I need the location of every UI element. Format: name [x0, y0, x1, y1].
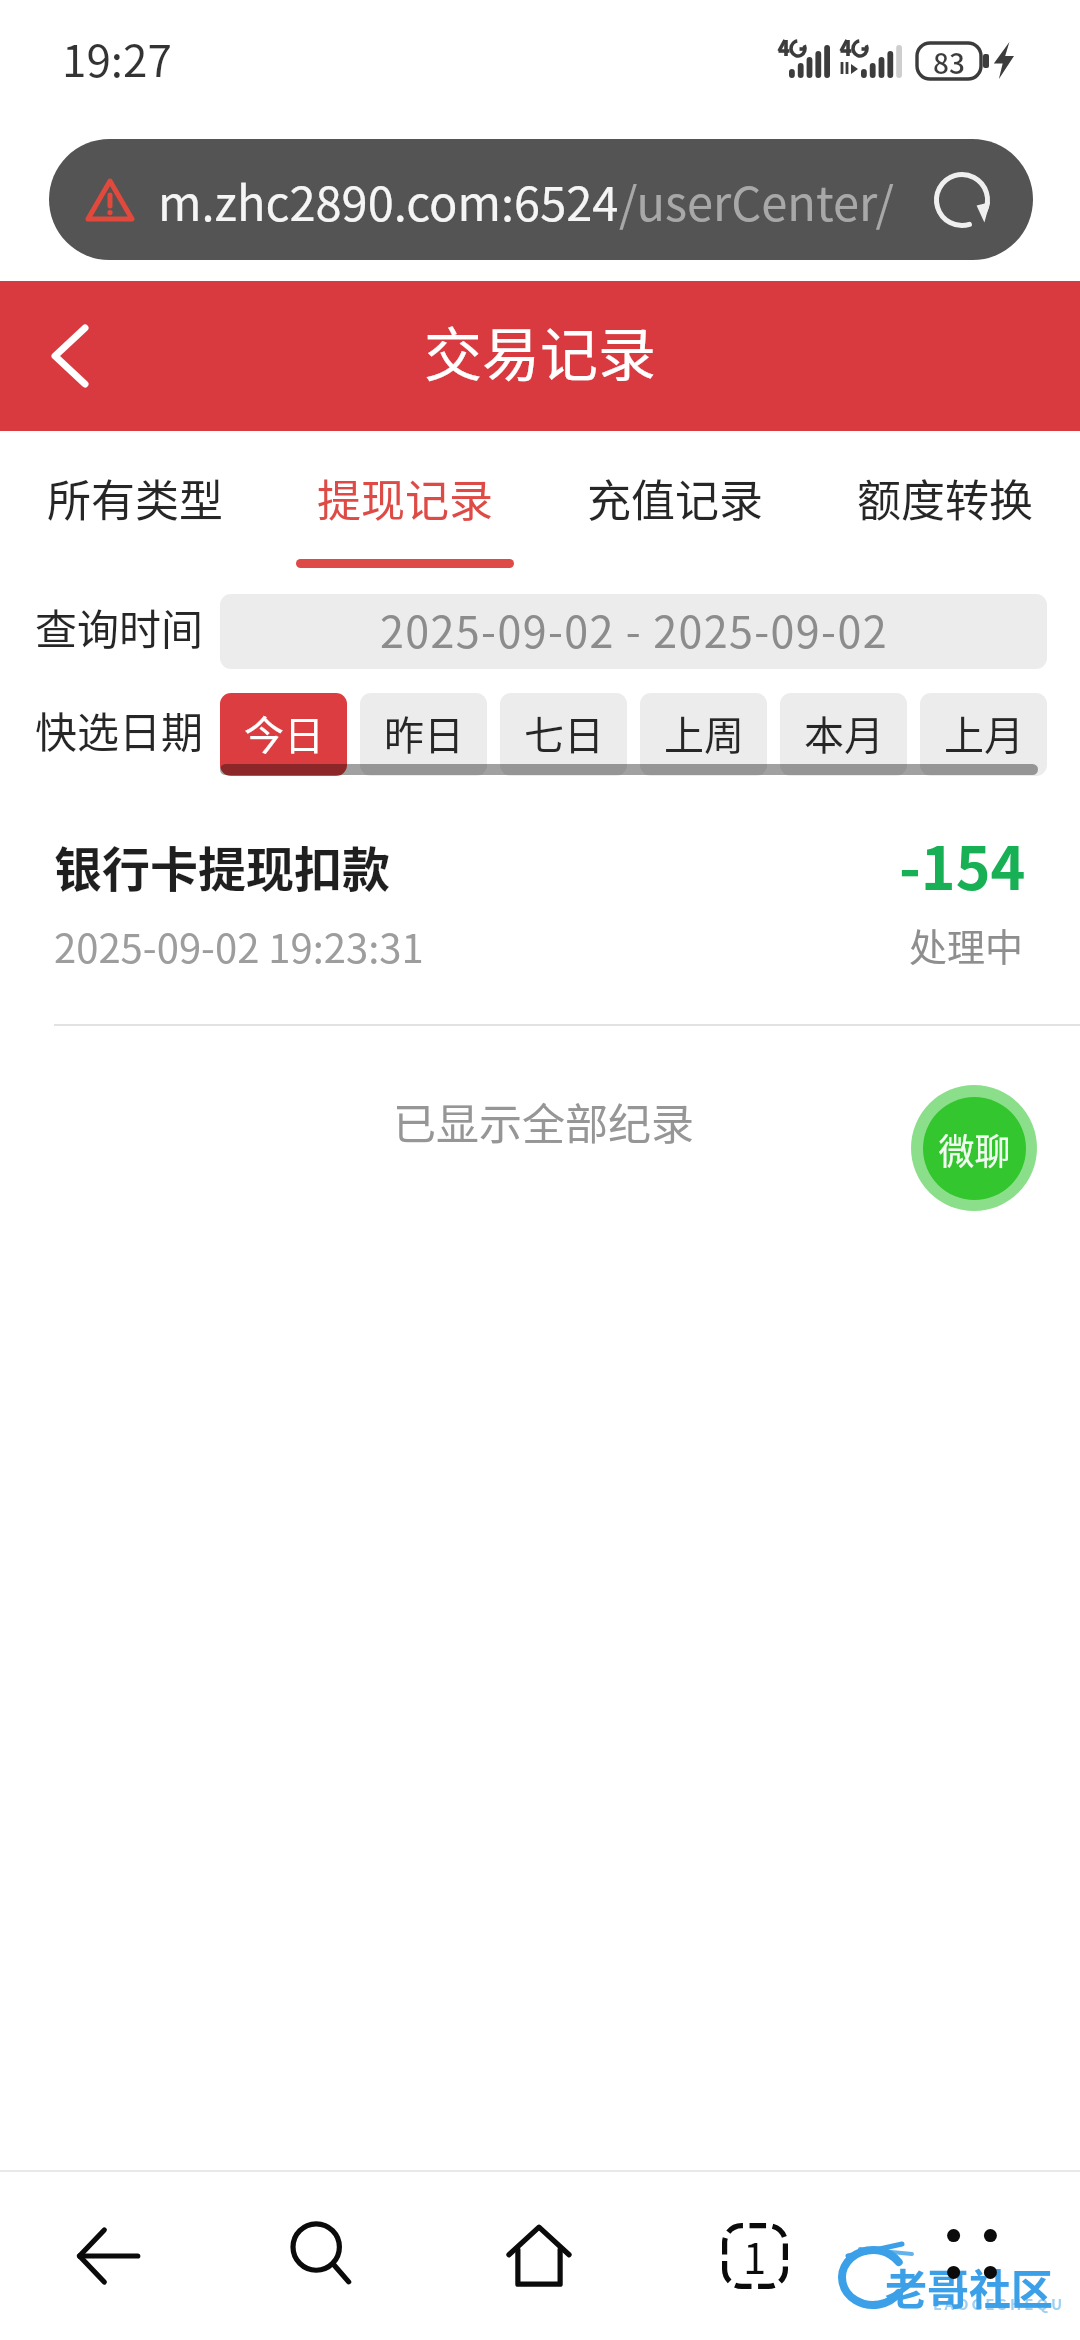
staticText: /userCenter/ [619, 166, 894, 234]
staticText: 2025-09-02 19:23:31 [54, 917, 424, 975]
button[interactable]: 额度转换 [810, 431, 1080, 581]
staticText: 微聊 [938, 1123, 1011, 1175]
staticText: 上周 [664, 704, 744, 762]
staticText: 老哥社区 [885, 2256, 1054, 2317]
staticText: 19:27 [62, 26, 172, 90]
staticText: 所有类型 [47, 466, 223, 530]
staticText: 交易记录 [424, 309, 657, 393]
button[interactable]: m.zhc2890.com:6524 [49, 139, 1033, 260]
staticText: 已显示全部纪录 [393, 1090, 694, 1152]
button[interactable]: More [886, 2170, 1058, 2338]
staticText: 充值记录 [587, 466, 763, 530]
staticText: 1 [743, 2225, 767, 2286]
staticText: 七日 [524, 704, 604, 762]
staticText: 今日 [244, 704, 324, 762]
button[interactable]: Back [22, 308, 118, 404]
staticText: 本月 [804, 704, 884, 762]
button[interactable]: 七日 [500, 693, 627, 776]
staticText: 查询时间 [35, 596, 204, 657]
button[interactable]: 银行卡提现扣款 [0, 800, 1080, 1025]
staticText: 银行卡提现扣款 [54, 831, 391, 901]
button[interactable]: Reload [916, 154, 1008, 246]
button[interactable]: Back [22, 2172, 194, 2340]
button[interactable]: 2025-09-02 - 2025-09-02 [220, 594, 1047, 669]
staticText: 昨日 [384, 704, 464, 762]
staticText: 83 [933, 42, 965, 78]
button[interactable]: 上周 [640, 693, 767, 776]
button[interactable]: 本月 [780, 693, 907, 776]
button[interactable]: 微聊 [911, 1085, 1037, 1211]
staticText: LAOGESHEQU [933, 2293, 1066, 2315]
button[interactable]: 所有类型 [0, 431, 270, 581]
button[interactable]: 上月 [920, 693, 1047, 776]
staticText: 快选日期 [35, 699, 204, 760]
button[interactable]: 充值记录 [540, 431, 810, 581]
button[interactable]: 今日 [220, 693, 347, 776]
button[interactable]: 提现记录 [270, 431, 540, 581]
staticText: m.zhc2890.com:6524 [158, 166, 619, 234]
staticText: 上月 [944, 704, 1024, 762]
button[interactable]: 昨日 [360, 693, 487, 776]
staticText: 额度转换 [857, 466, 1033, 530]
button[interactable]: Home [453, 2172, 625, 2340]
staticText: -154 [899, 822, 1026, 907]
staticText: 处理中 [909, 917, 1024, 972]
staticText: 2025-09-02 - 2025-09-02 [380, 598, 888, 660]
button[interactable]: Tabs [669, 2172, 841, 2340]
staticText: 提现记录 [317, 466, 493, 530]
button[interactable]: Search [236, 2170, 408, 2338]
